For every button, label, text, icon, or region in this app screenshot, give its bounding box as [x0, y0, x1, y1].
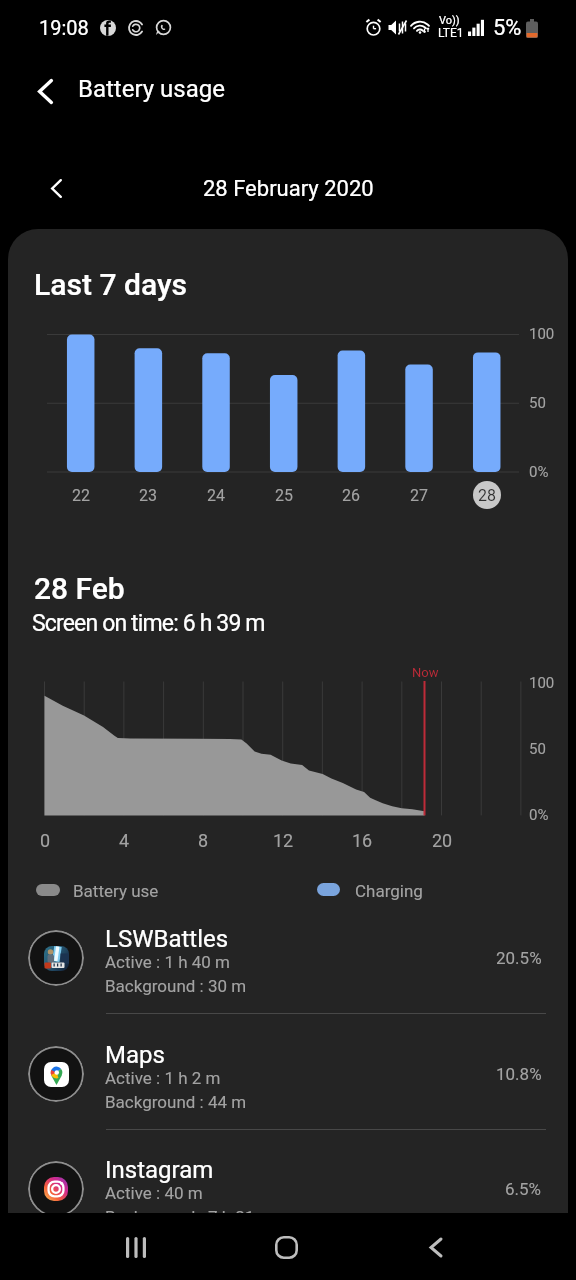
button[interactable]: Back	[386, 1213, 486, 1280]
staticText: 27	[410, 486, 428, 505]
staticText: Now	[412, 665, 439, 680]
staticText: 25	[275, 486, 293, 505]
staticText: 100	[529, 325, 555, 343]
staticText: 10.8%	[496, 1064, 542, 1084]
staticText: Screen on time: 6 h 39 m	[32, 610, 265, 637]
button[interactable]: Home	[236, 1213, 336, 1280]
staticText: Charging	[355, 881, 423, 901]
staticText: 24	[207, 486, 225, 505]
staticText: Active : 1 h 40 m	[105, 952, 230, 972]
button[interactable]	[8, 1017, 568, 1131]
staticText: Background : 7 h 21 m	[105, 1207, 274, 1227]
staticText: 0	[40, 830, 51, 851]
staticText: Instagram	[105, 1156, 214, 1184]
staticText: 0%	[529, 463, 549, 481]
staticText: 50	[529, 740, 546, 758]
staticText: 12	[273, 830, 294, 851]
staticText: 100	[529, 674, 555, 692]
staticText: Background : 30 m	[105, 976, 247, 996]
staticText: Battery use	[73, 881, 159, 901]
staticText: LSWBattles	[105, 925, 229, 953]
staticText: 5%	[493, 15, 522, 41]
button[interactable]	[8, 901, 568, 1015]
button[interactable]: Previous day	[32, 166, 76, 210]
staticText: 26	[342, 486, 360, 505]
staticText: 19:08	[39, 16, 89, 39]
staticText: 20.5%	[496, 948, 542, 968]
button[interactable]: Navigate up	[21, 67, 69, 115]
staticText: 6.5%	[505, 1179, 542, 1199]
staticText: 28 February 2020	[203, 176, 374, 202]
staticText: 28	[478, 486, 496, 505]
staticText: 50	[529, 394, 546, 412]
staticText: Last 7 days	[34, 267, 188, 302]
staticText: 23	[139, 486, 157, 505]
staticText: 22	[72, 486, 90, 505]
staticText: 0%	[529, 806, 549, 824]
staticText: Active : 40 m	[105, 1183, 203, 1203]
staticText: Active : 1 h 2 m	[105, 1068, 221, 1088]
staticText: 28 Feb	[34, 571, 125, 606]
staticText: Background : 44 m	[105, 1092, 247, 1112]
button[interactable]	[8, 1132, 568, 1246]
staticText: 16	[352, 830, 373, 851]
staticText: LTE1	[438, 26, 464, 40]
staticText: 8	[198, 830, 209, 851]
staticText: 4	[119, 830, 130, 851]
staticText: 20	[432, 830, 453, 851]
button[interactable]: Recent apps	[86, 1213, 186, 1280]
staticText: Maps	[105, 1041, 165, 1069]
staticText: Battery usage	[78, 75, 225, 103]
staticText: Vo))	[439, 14, 460, 27]
